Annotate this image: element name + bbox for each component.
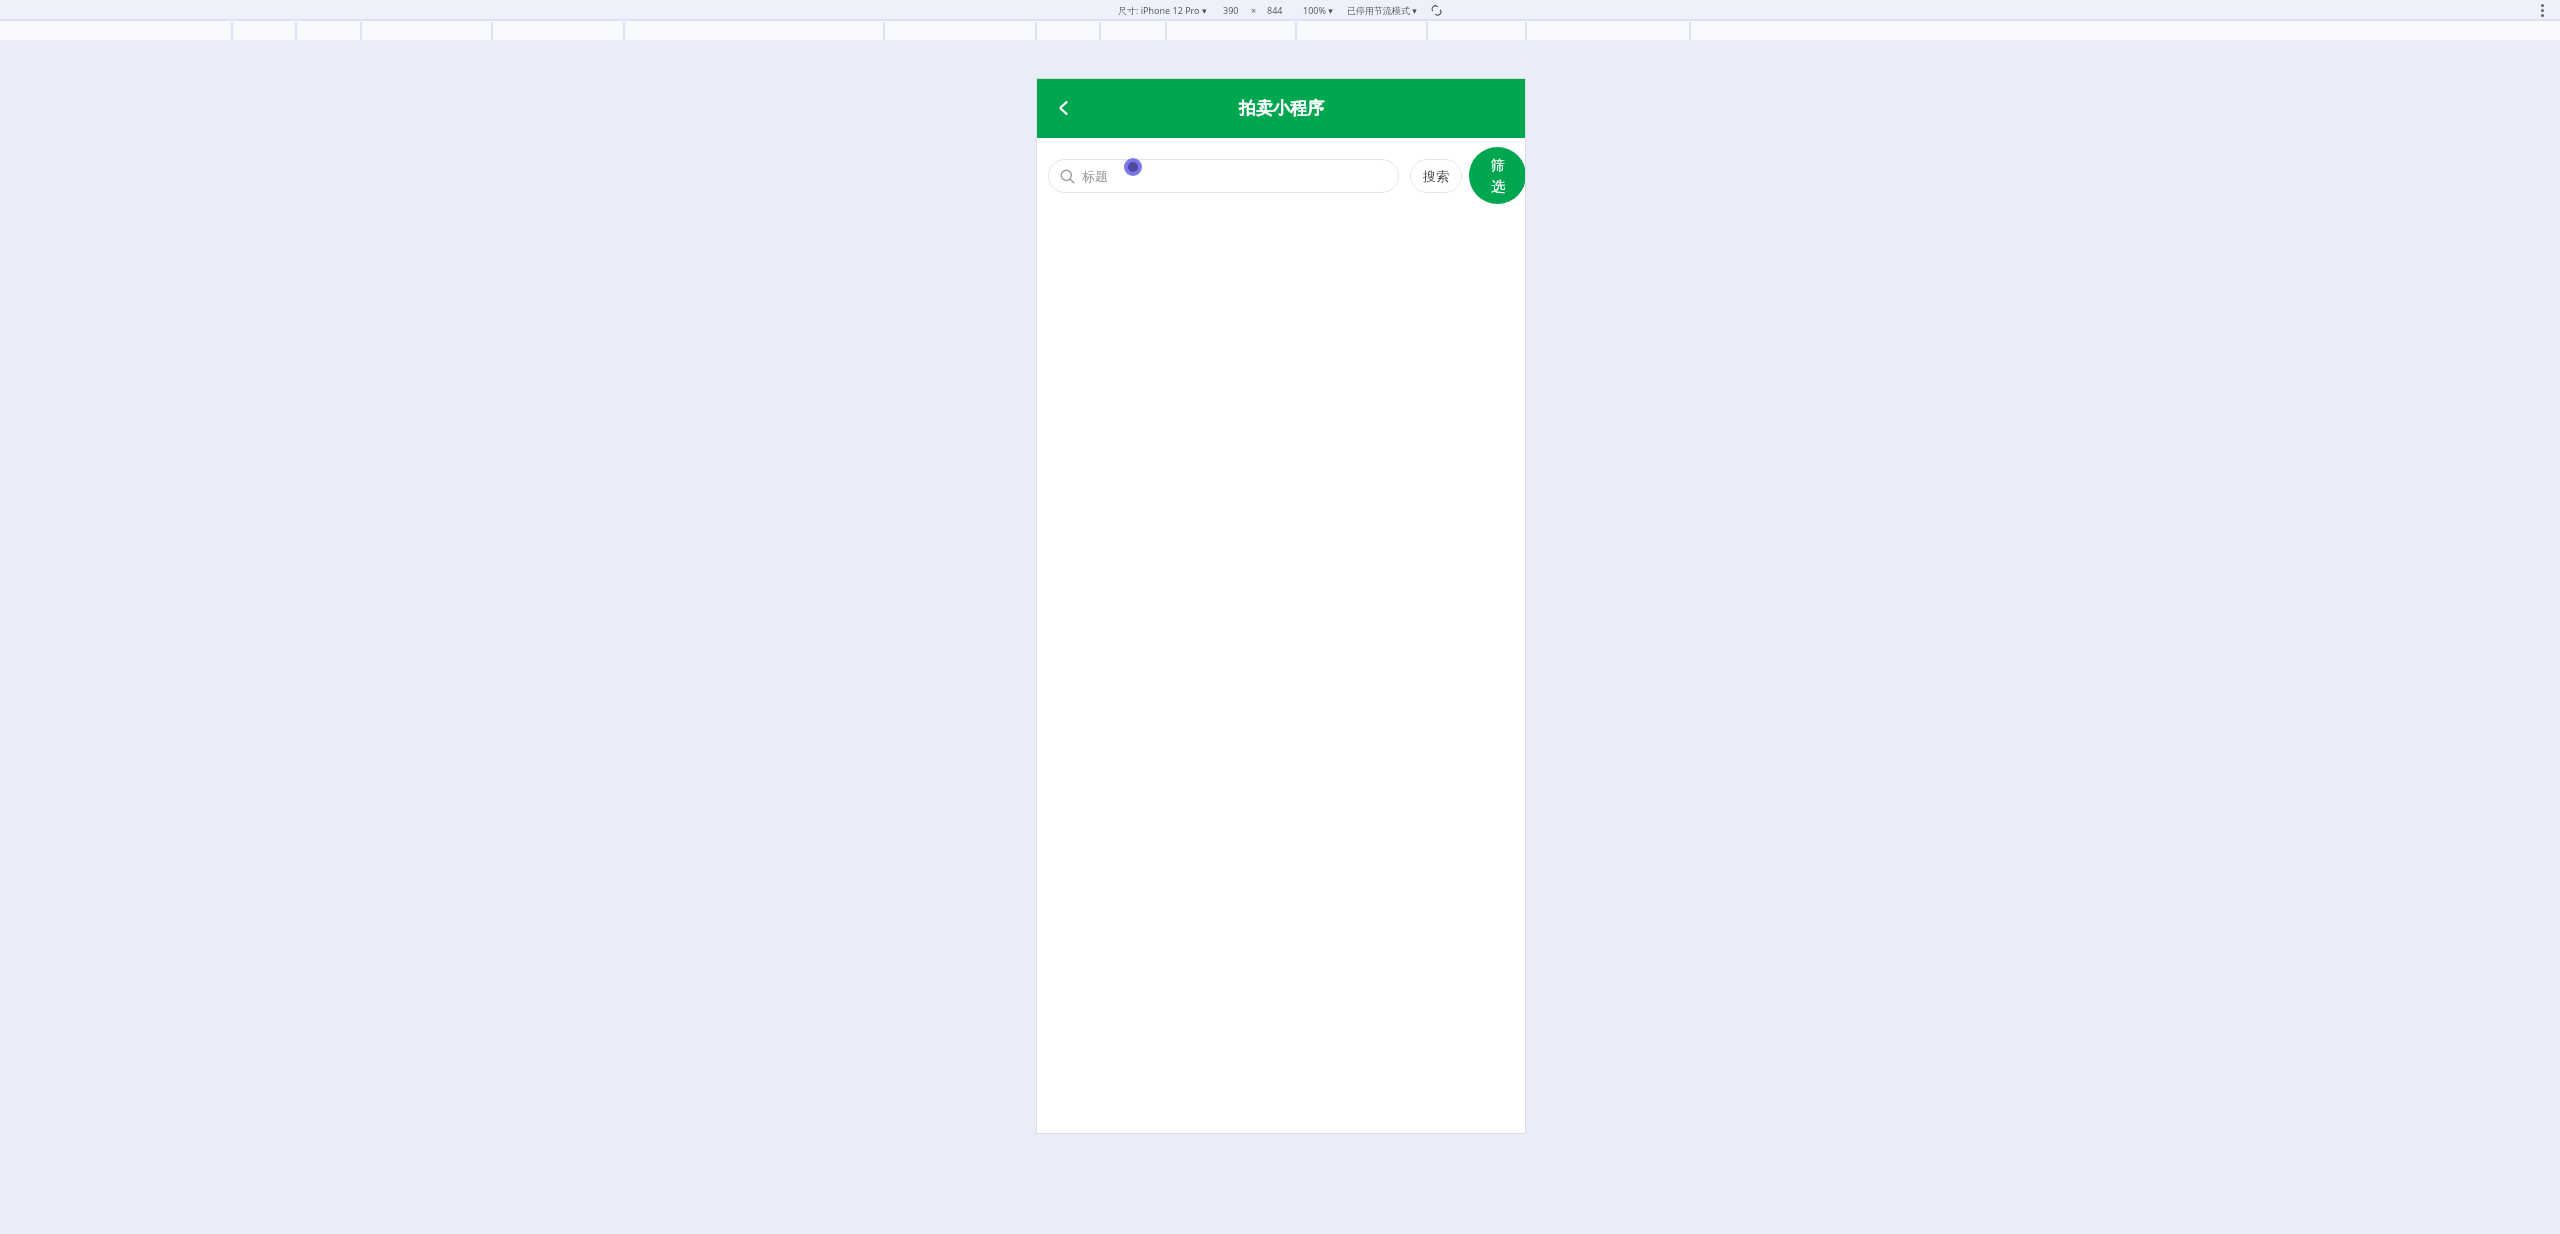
staticText: 尺寸: iPhone 12 Pro ▾ (1118, 4, 1207, 16)
staticText: 标题 (1082, 168, 1108, 184)
staticText: 搜索 (1423, 168, 1449, 184)
button[interactable]: 筛 选 (1469, 147, 1526, 204)
staticText: 已停用节流模式 ▾ (1347, 4, 1417, 16)
staticText: 100% ▾ (1303, 4, 1333, 16)
staticText: 844 (1267, 4, 1283, 16)
button[interactable]: 标题 (1048, 159, 1399, 193)
button[interactable]: Back (1042, 86, 1086, 130)
staticText: 390 (1223, 4, 1239, 16)
staticText: × (1251, 4, 1257, 16)
button[interactable]: More options (2532, 0, 2552, 20)
staticText: 筛 选 (1491, 157, 1505, 195)
staticText: 拍卖小程序 (1239, 98, 1324, 119)
button[interactable]: 搜索 (1410, 159, 1462, 193)
